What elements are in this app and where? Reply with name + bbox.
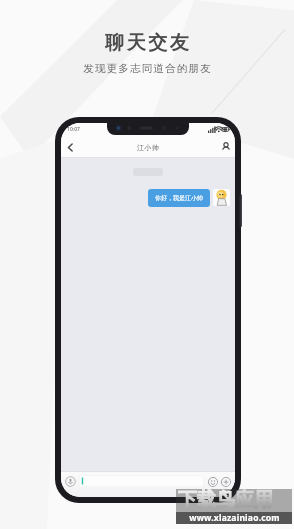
- staticText: 聊天交友: [104, 31, 190, 55]
- staticText: 应用: [235, 488, 273, 512]
- button[interactable]: Back: [61, 138, 79, 156]
- button[interactable]: Avatar: [213, 189, 230, 206]
- staticText: 10:07: [67, 126, 80, 133]
- staticText: 下载鸟: [178, 488, 235, 512]
- button[interactable]: Profile: [217, 138, 235, 156]
- button[interactable]: Emoji: [207, 476, 218, 487]
- staticText: 发现更多志同道合的朋友: [83, 62, 212, 75]
- button[interactable]: [79, 475, 204, 487]
- staticText: www.xlazainiao.com: [189, 512, 280, 524]
- button[interactable]: Voice message: [65, 476, 76, 487]
- button[interactable]: 你好，我是江小帅: [148, 189, 210, 207]
- staticText: 你好，我是江小帅: [155, 194, 203, 202]
- staticText: 江小帅: [137, 143, 159, 152]
- button[interactable]: More options: [220, 476, 231, 487]
